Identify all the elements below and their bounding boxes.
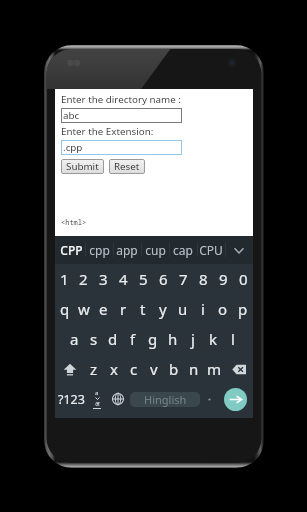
button[interactable]: 8 [193,264,213,294]
button[interactable]: cpp [85,236,113,264]
staticText: t [140,299,146,319]
button[interactable]: CPU [197,236,225,264]
button[interactable]: c [124,354,144,384]
staticText: cpp [89,242,110,258]
staticText: CPU [199,242,223,258]
button[interactable]: l [223,324,243,354]
staticText: 5 [139,269,148,289]
button[interactable]: 4 [113,264,133,294]
staticText: z [90,359,98,379]
staticText: b [169,359,179,379]
staticText: l [231,329,235,349]
staticText: j [191,329,195,349]
button[interactable]: n [184,354,204,384]
staticText: अ [95,400,100,408]
button[interactable]: Submit [61,159,104,174]
staticText: h [168,329,178,349]
button[interactable]: v [144,354,164,384]
button[interactable]: Change keyboard [106,384,130,414]
button[interactable]: z [84,354,104,384]
button[interactable]: Switch language [87,384,106,414]
button[interactable]: x [104,354,124,384]
button[interactable]: a [65,324,84,354]
staticText: v [150,359,158,379]
button[interactable]: app [113,236,141,264]
staticText: 6 [159,269,168,289]
button[interactable]: j [183,324,203,354]
staticText: e [99,299,108,319]
staticText: q [60,299,70,319]
button[interactable]: 5 [133,264,153,294]
button[interactable]: 9 [213,264,233,294]
staticText: app [116,242,138,258]
staticText: cap [173,242,193,258]
button[interactable]: r [113,294,133,324]
staticText: 7 [179,269,188,289]
button[interactable]: h [163,324,183,354]
staticText: Submit [66,160,99,173]
button[interactable]: ?123 [55,384,87,414]
staticText: <html> [61,218,87,228]
staticText: c [130,359,138,379]
staticText: r [120,299,127,319]
staticText: 1 [60,269,69,289]
button[interactable]: 1 [55,264,74,294]
button[interactable]: cup [141,236,169,264]
staticText: 2 [79,269,88,289]
staticText: Hinglish [144,392,187,407]
button[interactable]: cap [169,236,197,264]
button[interactable]: 3 [93,264,113,294]
staticText: Reset [114,160,140,173]
button[interactable]: i [193,294,213,324]
button[interactable]: Shift [55,354,84,384]
button[interactable]: 7 [173,264,193,294]
button[interactable]: 2 [74,264,93,294]
staticText: CPP [60,242,83,258]
button[interactable]: u [173,294,193,324]
button[interactable]: q [55,294,74,324]
button[interactable]: e [93,294,113,324]
button[interactable]: Backspace [224,354,253,384]
button[interactable]: s [84,324,103,354]
button[interactable]: p [233,294,253,324]
button[interactable]: Enter [224,388,247,411]
button[interactable]: abc [61,108,182,123]
button[interactable]: f [123,324,143,354]
staticText: g [148,329,158,349]
button[interactable]: o [213,294,233,324]
button[interactable]: y [153,294,173,324]
staticText: d [108,329,118,349]
button[interactable]: d [103,324,123,354]
button[interactable]: 6 [153,264,173,294]
staticText: abc [63,109,80,122]
staticText: 0 [239,269,248,289]
staticText: a [95,389,99,397]
staticText: Enter the Extension: [61,125,154,138]
staticText: a [70,329,79,349]
staticText: u [178,299,188,319]
button[interactable]: Hinglish [130,392,200,407]
button[interactable]: b [164,354,184,384]
button[interactable]: Reset [109,159,145,174]
button[interactable]: CPP [57,236,85,264]
button[interactable]: w [74,294,93,324]
staticText: y [159,299,167,319]
staticText: 4 [119,269,128,289]
button[interactable]: t [133,294,153,324]
staticText: n [189,359,199,379]
staticText: ?123 [58,391,85,408]
staticText: o [218,299,228,319]
staticText: s [90,329,98,349]
button[interactable]: g [143,324,163,354]
button[interactable]: m [204,354,224,384]
button[interactable]: More suggestions [225,236,253,264]
staticText: Enter the directory name : [61,93,181,106]
button[interactable]: 0 [233,264,253,294]
button[interactable] [200,384,218,414]
button[interactable]: .cpp [61,140,182,155]
staticText: w [78,299,90,319]
staticText: f [130,329,136,349]
button[interactable]: k [203,324,223,354]
staticText: m [207,359,222,379]
staticText: .cpp [63,141,83,154]
